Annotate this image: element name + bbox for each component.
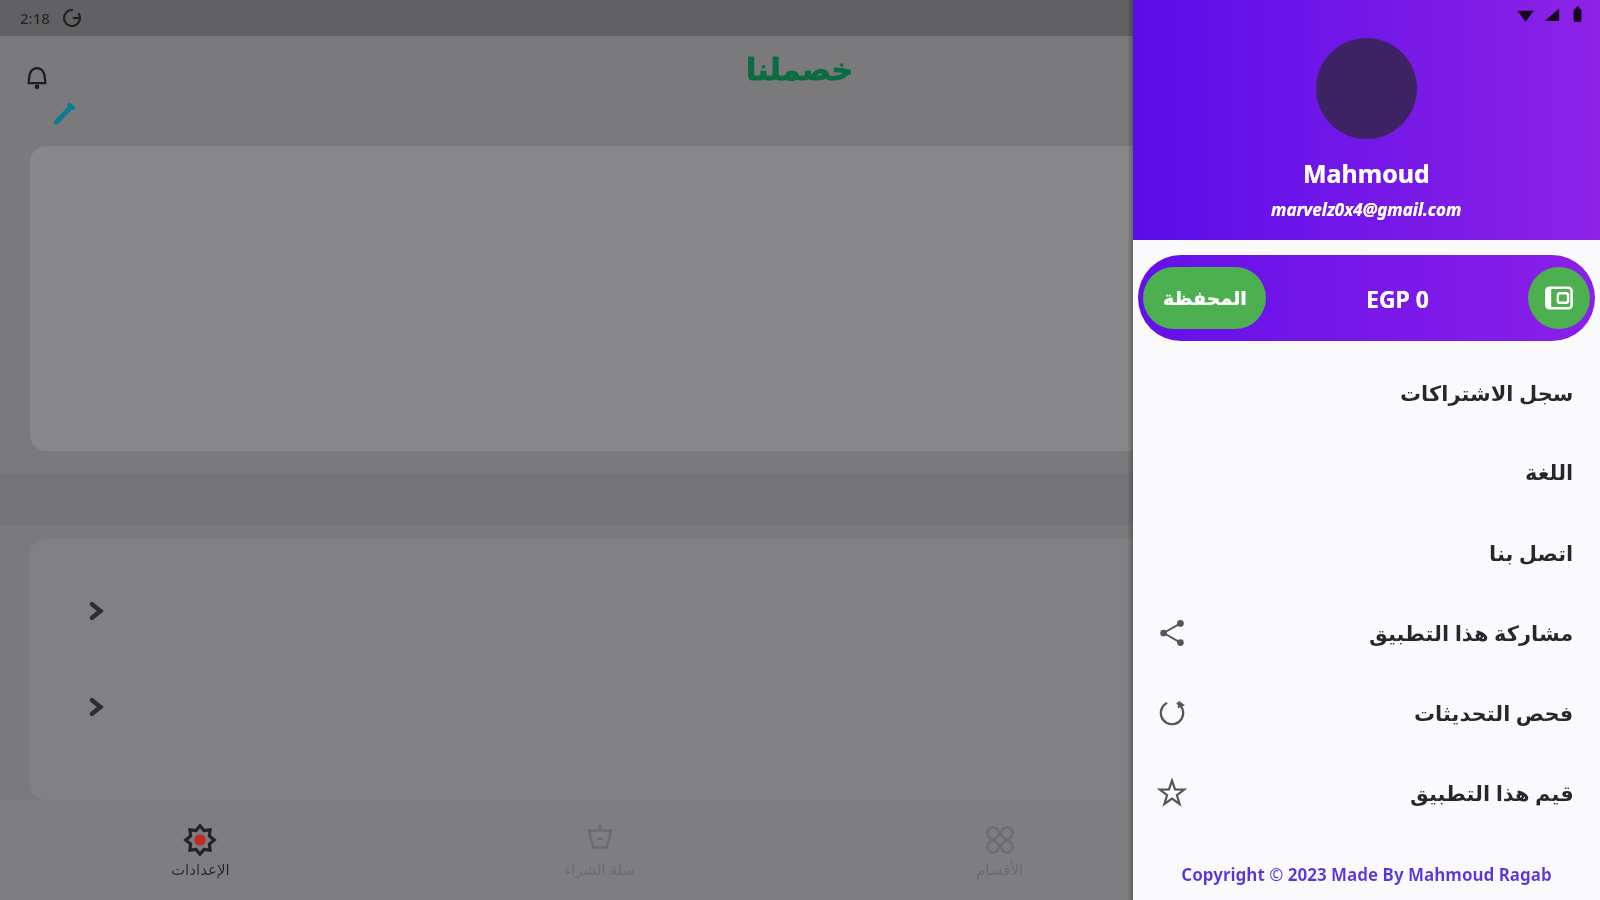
- button[interactable]: الرئيسية: [1200, 800, 1600, 900]
- button[interactable]: [30, 679, 1570, 735]
- staticText: سجل الاشتراكات: [1400, 379, 1574, 408]
- staticText: الرئيسية: [1374, 861, 1426, 878]
- button[interactable]: Edit: [44, 94, 84, 134]
- staticText: سلة الشراء: [564, 859, 636, 879]
- staticText: marvelz0x4@gmail.com: [1271, 198, 1462, 221]
- staticText: الإعدادات: [171, 861, 230, 878]
- button[interactable]: قيم هذا التطبيق: [1133, 753, 1600, 833]
- staticText: Mahmoud: [1303, 156, 1430, 190]
- button[interactable]: [30, 146, 1570, 451]
- staticText: المحفظة: [1163, 287, 1247, 309]
- staticText: 2:18: [20, 8, 50, 28]
- staticText: فحص التحديثات: [1414, 699, 1574, 728]
- staticText: قيم هذا التطبيق: [1410, 779, 1574, 808]
- button[interactable]: فحص التحديثات: [1133, 673, 1600, 753]
- button[interactable]: [30, 583, 1570, 639]
- staticText: اللغة: [1525, 461, 1574, 485]
- button[interactable]: اتصل بنا: [1133, 513, 1600, 593]
- staticText: مشاركة هذا التطبيق: [1369, 619, 1574, 648]
- staticText: Copyright © 2023 Made By Mahmoud Ragab: [1145, 863, 1588, 886]
- button[interactable]: Profile picture: [1316, 38, 1417, 139]
- button[interactable]: مشاركة هذا التطبيق: [1133, 593, 1600, 673]
- button[interactable]: Notifications: [14, 56, 60, 102]
- staticText: EGP 0: [1366, 283, 1429, 314]
- button[interactable]: الإعدادات: [0, 800, 400, 900]
- staticText: خصملنا: [746, 52, 854, 87]
- staticText: الأقسام: [976, 861, 1024, 878]
- button[interactable]: اللغة: [1133, 433, 1600, 513]
- button[interactable]: الأقسام: [800, 800, 1200, 900]
- button[interactable]: المحفظة: [1143, 260, 1590, 336]
- button[interactable]: سجل الاشتراكات: [1133, 353, 1600, 433]
- staticText: اتصل بنا: [1489, 539, 1574, 568]
